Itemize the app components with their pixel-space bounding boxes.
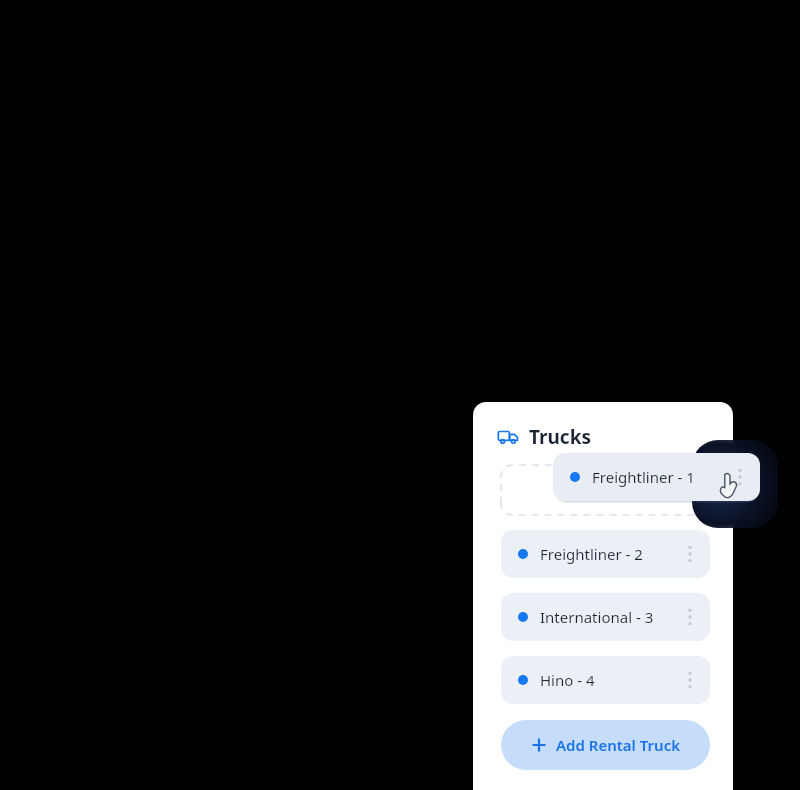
staticText: Freightliner - 1 [592,467,695,487]
button[interactable]: Hino - 4 [501,656,710,704]
button[interactable]: Freightliner - 2 [501,530,710,578]
button[interactable]: International - 3 [501,593,710,641]
other: Trucks [497,426,519,448]
staticText: Hino - 4 [540,670,595,690]
staticText: International - 3 [540,607,654,627]
button[interactable]: Freightliner - 1 [553,453,760,501]
button[interactable]: More options for Freightliner - 2 [676,540,704,568]
staticText: Add Rental Truck [556,735,680,755]
button[interactable]: More options for Freightliner - 1 [726,463,754,491]
staticText: Freightliner - 2 [540,544,643,564]
staticText: Trucks [529,424,591,450]
button[interactable]: More options for Hino - 4 [676,666,704,694]
button[interactable]: More options for International - 3 [676,603,704,631]
button[interactable]: Add Rental Truck [501,720,710,770]
